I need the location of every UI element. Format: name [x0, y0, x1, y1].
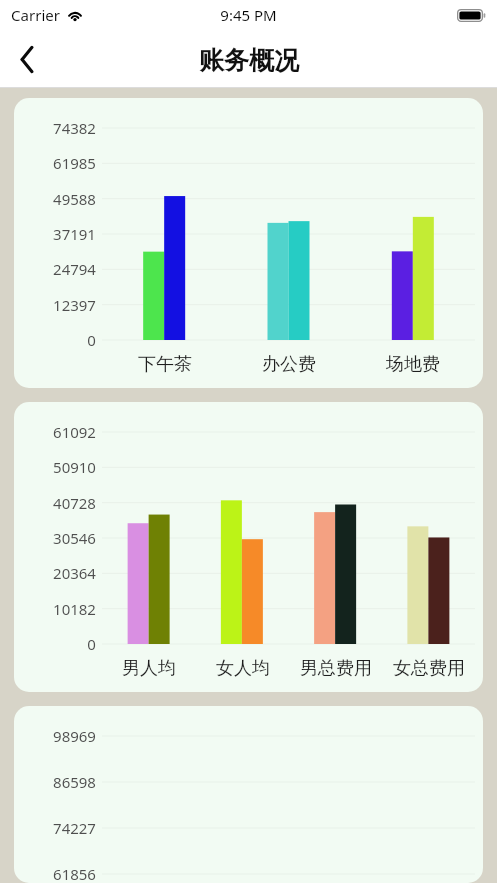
staticText: 10182 [53, 599, 96, 619]
button[interactable]: 0 [14, 402, 483, 692]
staticText: 40728 [53, 493, 96, 513]
staticText: 女人均 [216, 657, 270, 680]
staticText: 86598 [53, 772, 96, 792]
staticText: 男总费用 [300, 657, 372, 680]
staticText: 12397 [53, 295, 96, 315]
staticText: 98969 [53, 726, 96, 746]
staticText: 61856 [53, 864, 96, 883]
staticText: 0 [87, 634, 96, 654]
staticText: Carrier [11, 5, 60, 25]
staticText: 30546 [53, 528, 96, 548]
staticText: 24794 [53, 259, 96, 279]
staticText: 74227 [53, 818, 96, 838]
staticText: 20364 [53, 563, 96, 583]
staticText: 9:45 PM [220, 5, 277, 25]
staticText: 50910 [53, 457, 96, 477]
staticText: 场地费 [386, 353, 440, 376]
staticText: 女总费用 [393, 657, 465, 680]
button[interactable]: 24743 [14, 706, 483, 883]
staticText: 账务概况 [199, 45, 299, 76]
staticText: 男人均 [122, 657, 176, 680]
staticText: 61985 [53, 153, 96, 173]
staticText: 37191 [53, 224, 96, 244]
staticText: 0 [87, 330, 96, 350]
staticText: 49588 [53, 189, 96, 209]
button[interactable]: Back [0, 32, 54, 86]
staticText: 74382 [53, 118, 96, 138]
staticText: 办公费 [262, 353, 316, 376]
staticText: 61092 [53, 422, 96, 442]
button[interactable]: 0 [14, 98, 483, 388]
staticText: 下午茶 [138, 353, 192, 376]
